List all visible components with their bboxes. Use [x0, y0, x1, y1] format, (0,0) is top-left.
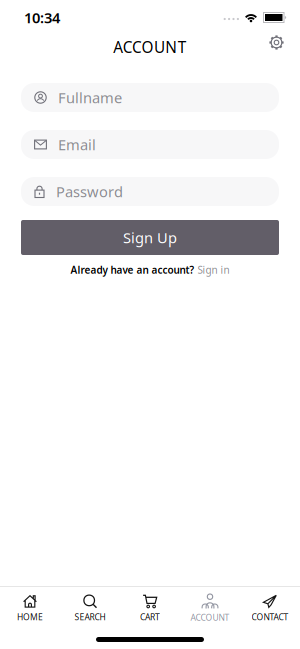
staticText: HOME	[17, 611, 43, 623]
button[interactable]: Sign in	[197, 263, 229, 277]
staticText: CONTACT	[251, 611, 288, 623]
button[interactable]: ACCOUNT	[180, 594, 240, 623]
staticText: ACCOUNT	[113, 37, 187, 57]
button[interactable]: SEARCH	[60, 594, 120, 623]
staticText: Password	[56, 182, 123, 201]
button[interactable]: Settings	[268, 34, 285, 51]
staticText: SEARCH	[74, 611, 105, 623]
staticText: Sign Up	[123, 228, 177, 247]
staticText: Sign in	[197, 263, 229, 277]
staticText: CART	[140, 611, 160, 623]
button[interactable]: Sign Up	[21, 220, 279, 255]
staticText: Already have an account?	[70, 263, 194, 277]
button[interactable]: Email	[21, 130, 279, 159]
button[interactable]: HOME	[0, 594, 60, 623]
staticText: ACCOUNT	[190, 612, 229, 623]
button[interactable]: Fullname	[21, 83, 279, 112]
staticText: 10:34	[24, 8, 60, 27]
staticText: Fullname	[58, 88, 122, 107]
button[interactable]: CART	[120, 594, 180, 623]
button[interactable]: CONTACT	[240, 594, 300, 623]
button[interactable]: Password	[21, 177, 279, 206]
staticText: Email	[58, 135, 96, 154]
